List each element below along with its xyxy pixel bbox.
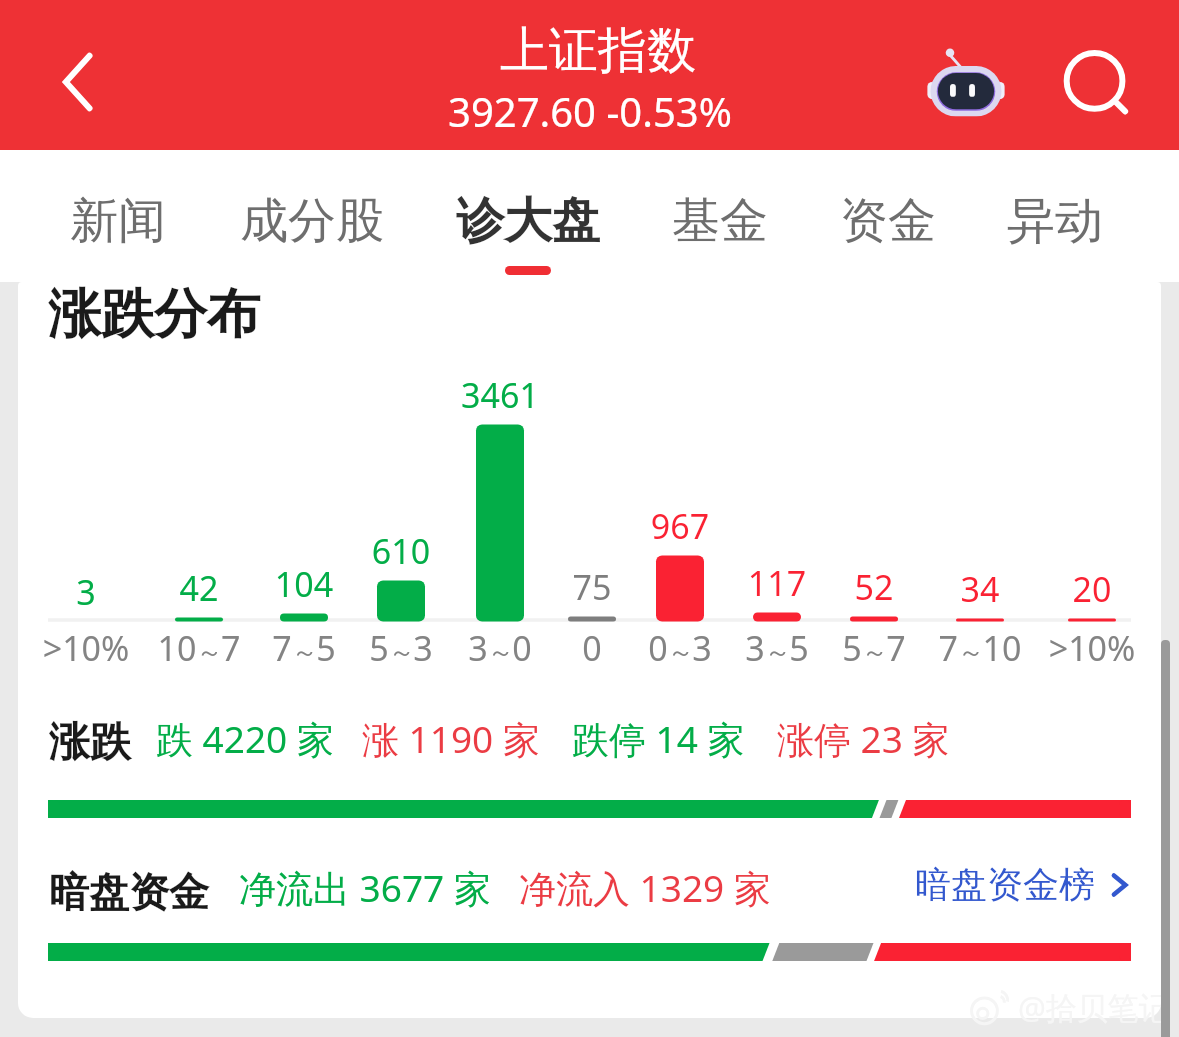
staticText: 610 (331, 528, 471, 574)
staticText: 34 (910, 566, 1050, 612)
staticText: 资金 (840, 191, 936, 251)
staticText: 3461 (430, 372, 570, 418)
staticText: 0 (522, 625, 662, 671)
staticText: 新闻 (70, 191, 166, 251)
button[interactable]: AI assistant (926, 42, 1006, 122)
button[interactable]: 异动 (987, 150, 1123, 282)
staticText: 跌 4220 家 (156, 713, 334, 764)
staticText: 3～5 (707, 625, 847, 671)
button[interactable]: Back (40, 44, 116, 120)
staticText: 暗盘资金榜 (915, 862, 1095, 907)
staticText: 异动 (1007, 191, 1103, 251)
staticText: 基金 (672, 191, 768, 251)
button[interactable]: 成分股 (220, 150, 404, 282)
staticText: 净流出 3677 家 (239, 862, 491, 913)
staticText: 104 (234, 561, 374, 607)
staticText: 涨跌 (49, 717, 131, 769)
staticText: 涨跌分布 (48, 281, 260, 348)
staticText: 成分股 (240, 191, 384, 251)
staticText: 5～3 (331, 625, 471, 671)
staticText: 20 (1022, 566, 1162, 612)
staticText: 0～3 (610, 625, 750, 671)
staticText: 净流入 1329 家 (519, 862, 771, 913)
button[interactable]: 新闻 (50, 150, 186, 282)
button[interactable]: 基金 (652, 150, 788, 282)
staticText: >10% (1022, 625, 1162, 671)
staticText: 涨停 23 家 (777, 713, 950, 764)
staticText: 跌停 14 家 (572, 713, 745, 764)
staticText: 10～7 (129, 625, 269, 671)
staticText: >10% (16, 625, 156, 671)
button[interactable]: 资金 (820, 150, 956, 282)
staticText: 涨 1190 家 (362, 713, 540, 764)
staticText: 7～5 (234, 625, 374, 671)
staticText: 暗盘资金 (49, 867, 209, 917)
staticText: 上证指数 (500, 20, 696, 82)
button[interactable]: 暗盘资金榜 (915, 862, 1137, 907)
staticText: 诊大盘 (456, 191, 600, 251)
staticText: 117 (707, 560, 847, 606)
staticText: 3927.60 -0.53% (448, 84, 732, 138)
staticText: 7～10 (910, 625, 1050, 671)
staticText: 3 (16, 569, 156, 615)
button[interactable]: Search (1062, 49, 1138, 125)
staticText: 5～7 (804, 625, 944, 671)
staticText: 75 (522, 564, 662, 610)
staticText: 3～0 (430, 625, 570, 671)
staticText: 42 (129, 565, 269, 611)
staticText: 52 (804, 564, 944, 610)
staticText: 967 (610, 503, 750, 549)
button[interactable]: 诊大盘 (436, 150, 620, 282)
staticText: @拾贝笔记 (1018, 986, 1170, 1028)
